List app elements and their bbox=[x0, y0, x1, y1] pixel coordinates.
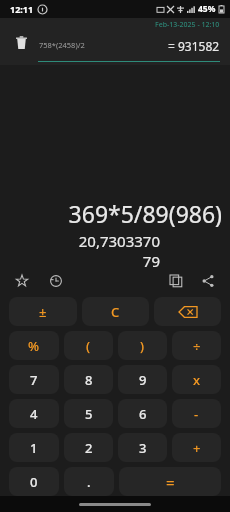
staticText: 9 bbox=[139, 371, 147, 389]
staticText: 758*(2458)/2 bbox=[39, 40, 85, 50]
staticText: x bbox=[193, 371, 201, 389]
staticText: 369*5/89(986) bbox=[8, 198, 222, 229]
button[interactable]: 6 bbox=[118, 399, 167, 428]
button[interactable]: 4 bbox=[9, 399, 59, 428]
button[interactable]: + bbox=[172, 433, 221, 462]
staticText: 20,730337079 bbox=[74, 231, 160, 271]
staticText: + bbox=[193, 439, 201, 457]
button[interactable]: Favorite bbox=[12, 271, 32, 291]
staticText: 45% bbox=[198, 3, 216, 15]
staticText: ± bbox=[39, 303, 47, 321]
staticText: . bbox=[87, 473, 91, 491]
button[interactable]: x bbox=[172, 365, 221, 394]
button[interactable]: Backspace bbox=[154, 297, 221, 326]
button[interactable]: ( bbox=[64, 331, 113, 360]
button[interactable]: Share bbox=[198, 271, 218, 291]
staticText: 5 bbox=[85, 405, 93, 423]
button[interactable]: 8 bbox=[64, 365, 113, 394]
staticText: 8 bbox=[85, 371, 93, 389]
button[interactable]: ) bbox=[118, 331, 167, 360]
staticText: 0 bbox=[30, 473, 38, 491]
button[interactable]: 1 bbox=[9, 433, 59, 462]
staticText: 7 bbox=[30, 371, 38, 389]
button[interactable]: 5 bbox=[64, 399, 113, 428]
staticText: 2 bbox=[85, 439, 93, 457]
button[interactable]: % bbox=[9, 331, 59, 360]
staticText: % bbox=[28, 337, 40, 355]
staticText: ÷ bbox=[193, 337, 201, 355]
button[interactable]: 2 bbox=[64, 433, 113, 462]
staticText: = 931582 bbox=[168, 38, 220, 54]
button[interactable]: ÷ bbox=[172, 331, 221, 360]
button[interactable]: History bbox=[46, 271, 66, 291]
button[interactable]: 7 bbox=[9, 365, 59, 394]
staticText: 1 bbox=[30, 439, 38, 457]
staticText: 4 bbox=[30, 405, 38, 423]
staticText: - bbox=[194, 405, 199, 423]
staticText: 6 bbox=[139, 405, 147, 423]
button[interactable]: Delete history bbox=[8, 29, 34, 55]
button[interactable]: 9 bbox=[118, 365, 167, 394]
button[interactable]: - bbox=[172, 399, 221, 428]
button[interactable]: = bbox=[119, 467, 221, 496]
staticText: 3 bbox=[139, 439, 147, 457]
staticText: ( bbox=[86, 337, 91, 355]
button[interactable]: 0 bbox=[9, 467, 59, 496]
staticText: 12:11 bbox=[10, 3, 34, 15]
staticText: = bbox=[166, 472, 175, 492]
button[interactable]: ± bbox=[9, 297, 77, 326]
button[interactable]: Copy bbox=[166, 271, 186, 291]
button[interactable]: 3 bbox=[118, 433, 167, 462]
button[interactable]: . bbox=[64, 467, 114, 496]
staticText: ) bbox=[140, 337, 145, 355]
button[interactable]: C bbox=[82, 297, 149, 326]
staticText: Feb-13-2025 - 12:10 bbox=[155, 20, 220, 30]
staticText: C bbox=[111, 303, 120, 321]
